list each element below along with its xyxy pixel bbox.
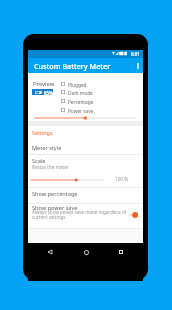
- staticText: 65%: [44, 90, 53, 96]
- button[interactable]: Battery preview: [32, 89, 53, 95]
- button[interactable]: Meter style: [28, 126, 143, 155]
- button[interactable]: Recents: [114, 245, 128, 259]
- button[interactable]: Dark mode: [59, 88, 109, 97]
- button[interactable]: Scale: [28, 155, 143, 187]
- button[interactable]: More options: [131, 58, 144, 73]
- staticText: Percentage: [68, 99, 94, 105]
- staticText: Show power save: [32, 204, 78, 212]
- staticText: 6:01: [131, 51, 140, 57]
- button[interactable]: Show power save: [28, 203, 143, 228]
- button[interactable]: Back: [43, 245, 57, 259]
- staticText: Always show power save mode regardless o…: [32, 209, 127, 215]
- staticText: 100 %: [115, 176, 129, 182]
- staticText: Plugged: [68, 82, 87, 88]
- button[interactable]: Show percentage: [28, 187, 143, 202]
- staticText: Scale: [32, 157, 46, 165]
- button[interactable]: Home: [79, 245, 93, 259]
- staticText: Settings: [32, 129, 53, 136]
- staticText: Show percentage: [32, 190, 78, 198]
- staticText: Resize the meter: [32, 164, 69, 170]
- button[interactable]: Power save: [59, 106, 109, 115]
- staticText: Custom Battery Meter: [34, 61, 111, 71]
- staticText: current settings: [32, 214, 66, 220]
- staticText: Preview: [33, 80, 55, 88]
- button[interactable]: Show power save toggle: [128, 210, 140, 220]
- staticText: Meter style: [32, 144, 62, 152]
- staticText: Dark mode: [68, 90, 93, 96]
- button[interactable]: Plugged: [59, 80, 109, 89]
- staticText: Power save: [68, 108, 94, 114]
- button[interactable]: Percentage: [59, 97, 109, 106]
